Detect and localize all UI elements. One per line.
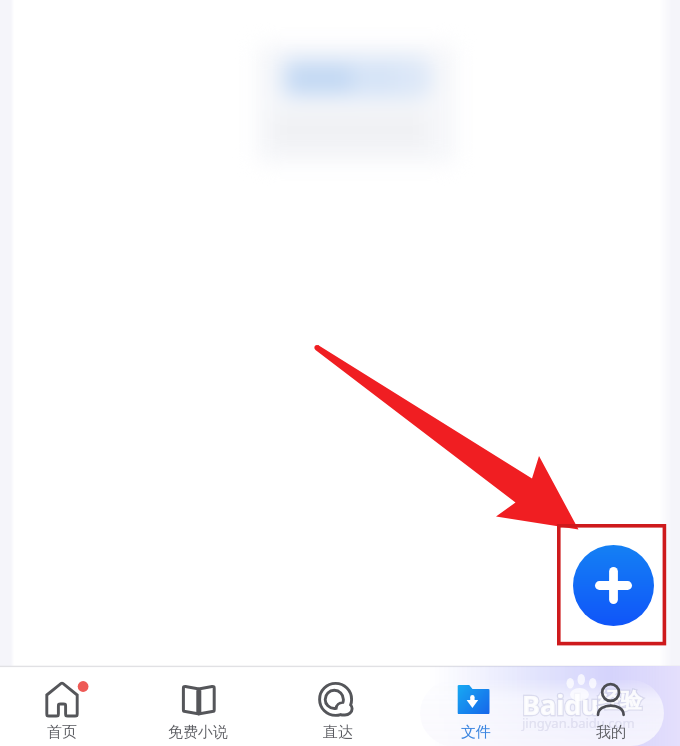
staticText: 直达: [296, 723, 380, 742]
button[interactable]: 我的: [569, 672, 653, 746]
staticText: 首页: [20, 723, 104, 742]
staticText: Baidu: [522, 686, 599, 723]
staticText: jingyan.baidu.com: [522, 714, 635, 732]
staticText: 我的: [569, 723, 653, 742]
button[interactable]: 免费小说: [156, 672, 240, 746]
staticText: 免费小说: [156, 723, 240, 742]
button[interactable]: 文件: [434, 672, 518, 746]
button[interactable]: 直达: [296, 672, 380, 746]
staticText: 经验: [598, 687, 642, 715]
button[interactable]: 首页: [20, 672, 104, 746]
staticText: 经验: [598, 687, 642, 715]
staticText: Baidu: [522, 686, 599, 723]
button[interactable]: Add: [573, 545, 654, 626]
staticText: 文件: [434, 723, 518, 742]
